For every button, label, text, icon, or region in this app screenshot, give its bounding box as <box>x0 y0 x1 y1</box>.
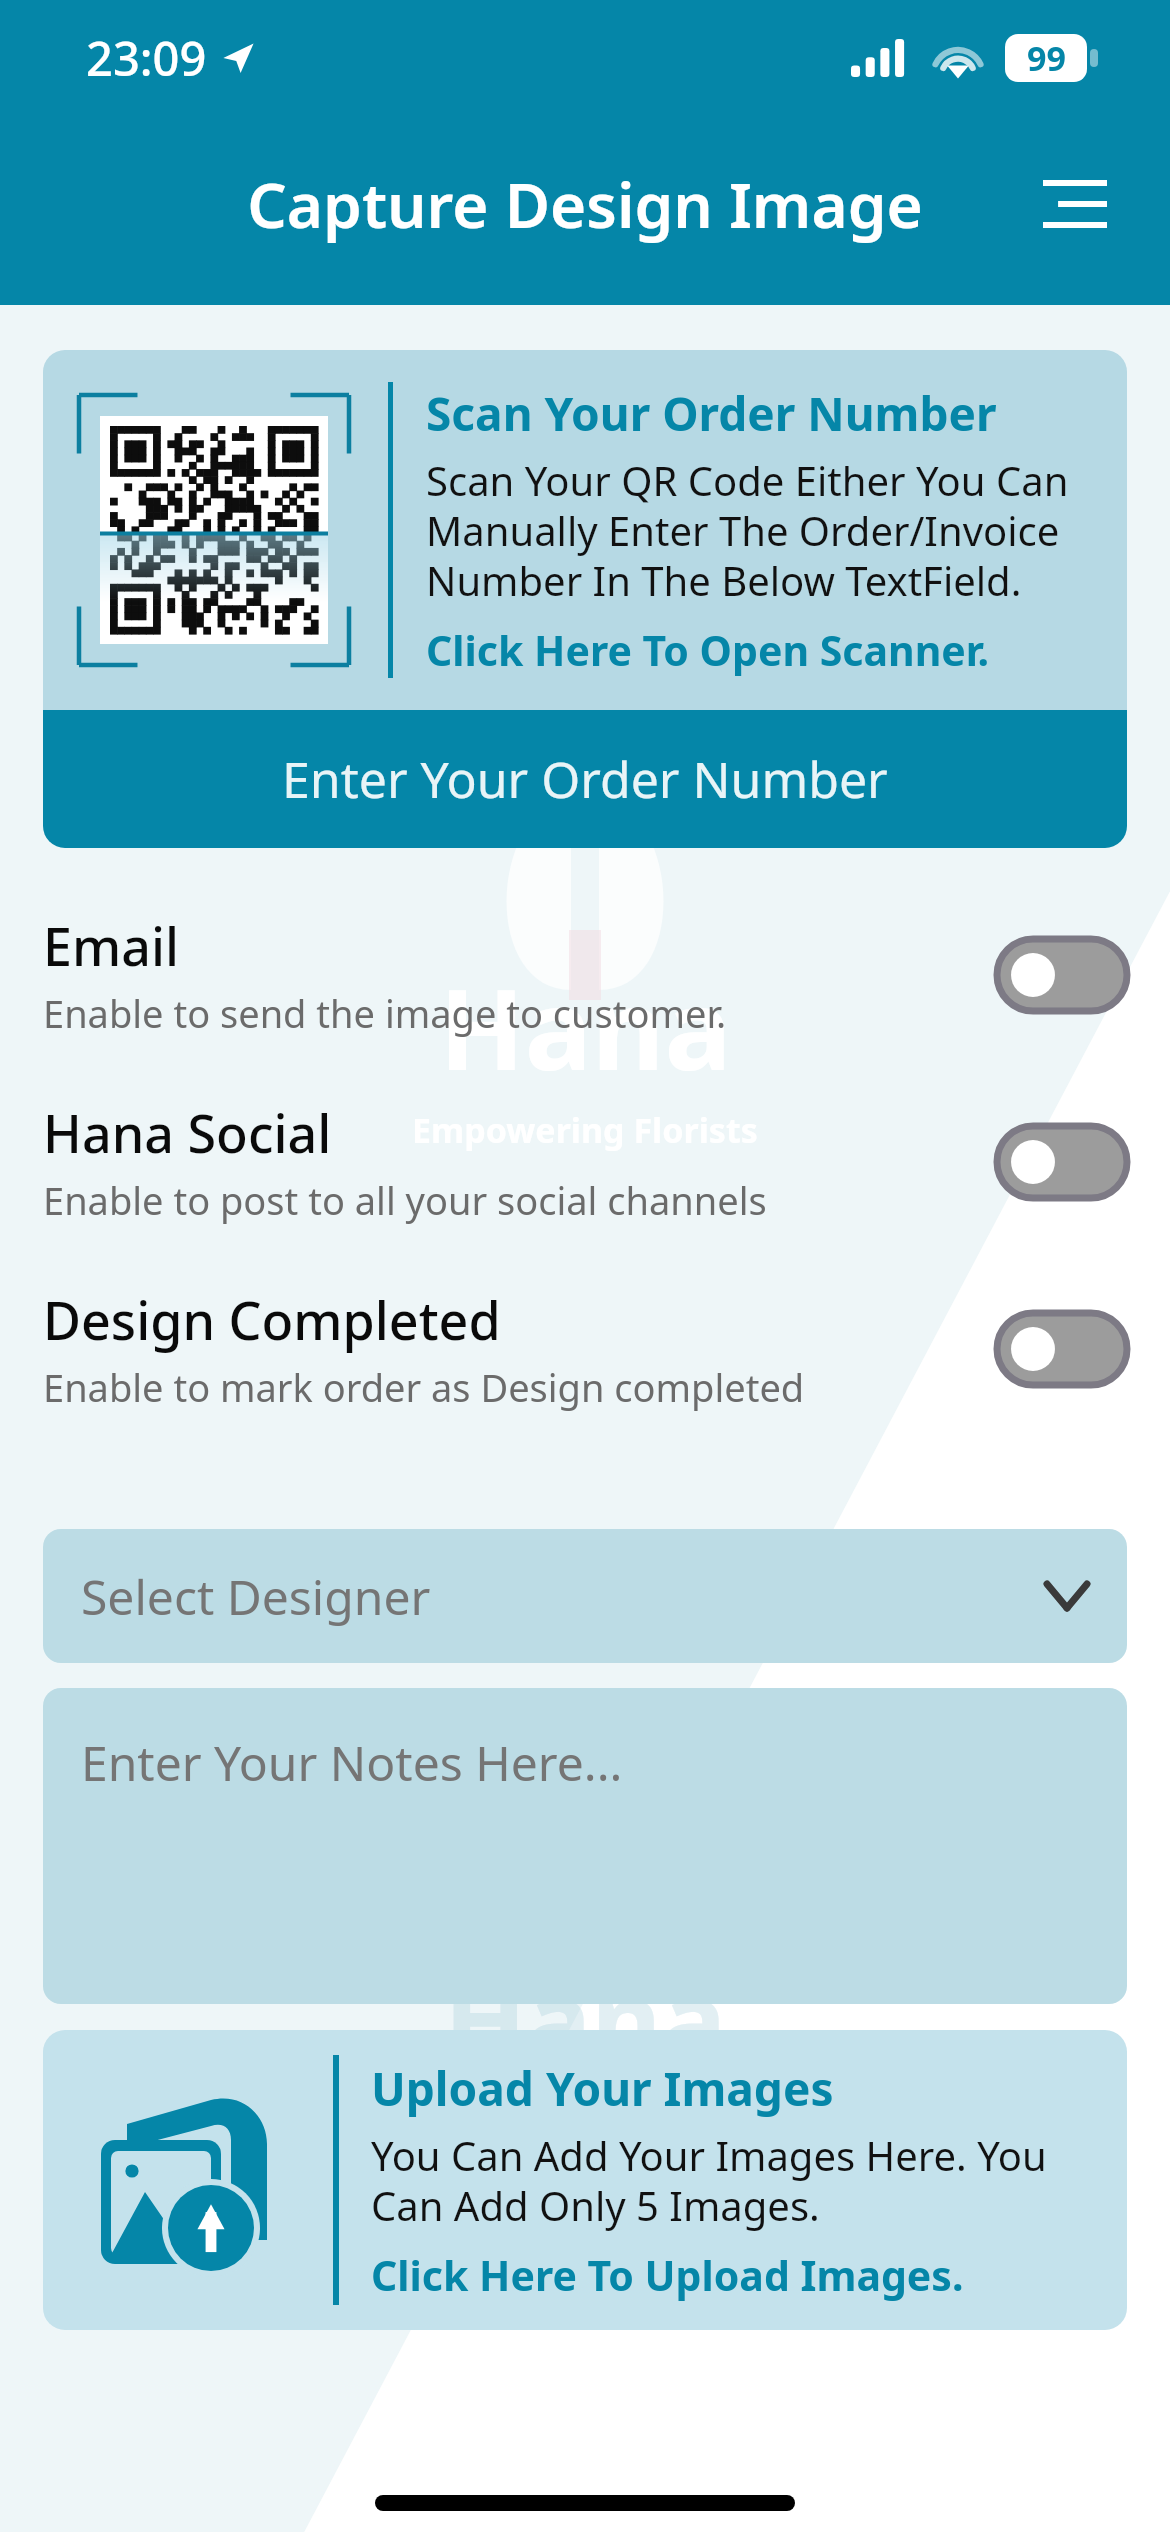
staticText: Design Completed <box>43 1284 501 1355</box>
staticText: Enable to send the image to customer. <box>43 987 727 1039</box>
staticText: Enter Your Notes Here... <box>81 1730 623 1795</box>
staticText: Email <box>43 910 180 981</box>
button[interactable]: Design Completed <box>43 1284 1127 1413</box>
button[interactable]: Email toggle <box>997 939 1127 1011</box>
staticText: Enable to mark order as Design completed <box>43 1361 805 1413</box>
button[interactable]: Enter Your Notes Here... <box>43 1688 1127 2004</box>
staticText: Capture Design Image <box>247 162 923 246</box>
staticText: Empowering Florists <box>412 1107 758 1153</box>
staticText: Select Designer <box>81 1564 1045 1629</box>
button[interactable]: Enter Your Order Number <box>43 710 1127 848</box>
button[interactable]: Menu <box>1032 161 1118 247</box>
button[interactable]: Design Completed toggle <box>997 1313 1127 1385</box>
button[interactable]: Email <box>43 910 1127 1039</box>
staticText: Enable to post to all your social channe… <box>43 1174 767 1226</box>
staticText: 23:09 <box>86 26 207 90</box>
staticText: Hana <box>439 950 732 1103</box>
button[interactable]: Upload images <box>43 2030 1127 2330</box>
button[interactable]: Select Designer <box>43 1529 1127 1663</box>
button[interactable]: Hana Social <box>43 1097 1127 1226</box>
button[interactable]: Click Here To Upload Images. <box>371 2247 964 2303</box>
staticText: Scan Your QR Code Either You Can Manuall… <box>426 453 1113 608</box>
staticText: Empowering Florists <box>417 2098 753 2143</box>
staticText: Enter Your Order Number <box>282 745 888 813</box>
staticText: Upload Your Images <box>371 2057 834 2120</box>
staticText: You Can Add Your Images Here. You Can Ad… <box>371 2128 1113 2233</box>
other: Upload images <box>91 2080 291 2280</box>
staticText: Hana Social <box>43 1097 332 1168</box>
staticText: Scan Your Order Number <box>426 382 997 445</box>
staticText: Hana <box>444 1945 727 2092</box>
staticText: 99 <box>1027 35 1066 81</box>
button[interactable]: Click Here To Open Scanner. <box>426 622 990 678</box>
button[interactable]: Hana Social toggle <box>997 1126 1127 1198</box>
